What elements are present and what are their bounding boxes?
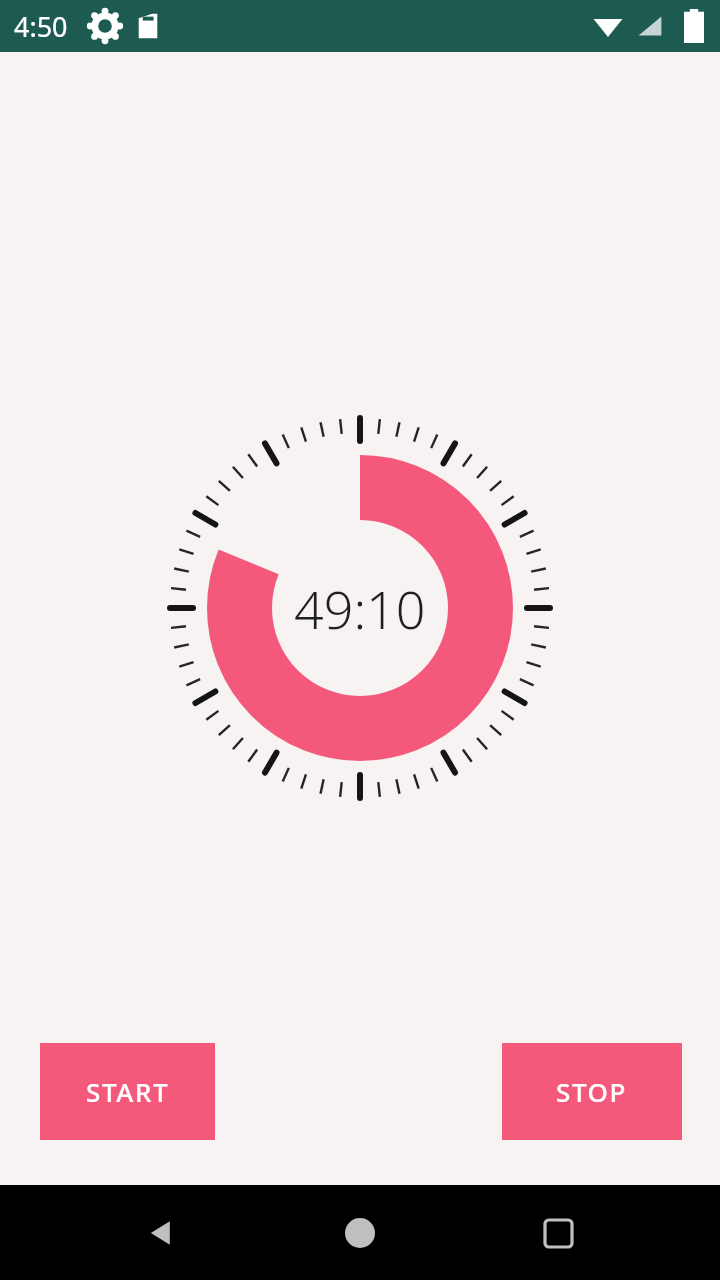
button[interactable]: Recent apps (522, 1197, 594, 1269)
button[interactable]: Back (126, 1197, 198, 1269)
button[interactable]: STOP (502, 1043, 682, 1140)
staticText: START (86, 1074, 170, 1109)
staticText: STOP (556, 1074, 628, 1109)
staticText: 4:50 (14, 8, 68, 45)
button[interactable]: START (40, 1043, 215, 1140)
button[interactable]: Home (324, 1197, 396, 1269)
staticText: 49:10 (294, 573, 426, 644)
